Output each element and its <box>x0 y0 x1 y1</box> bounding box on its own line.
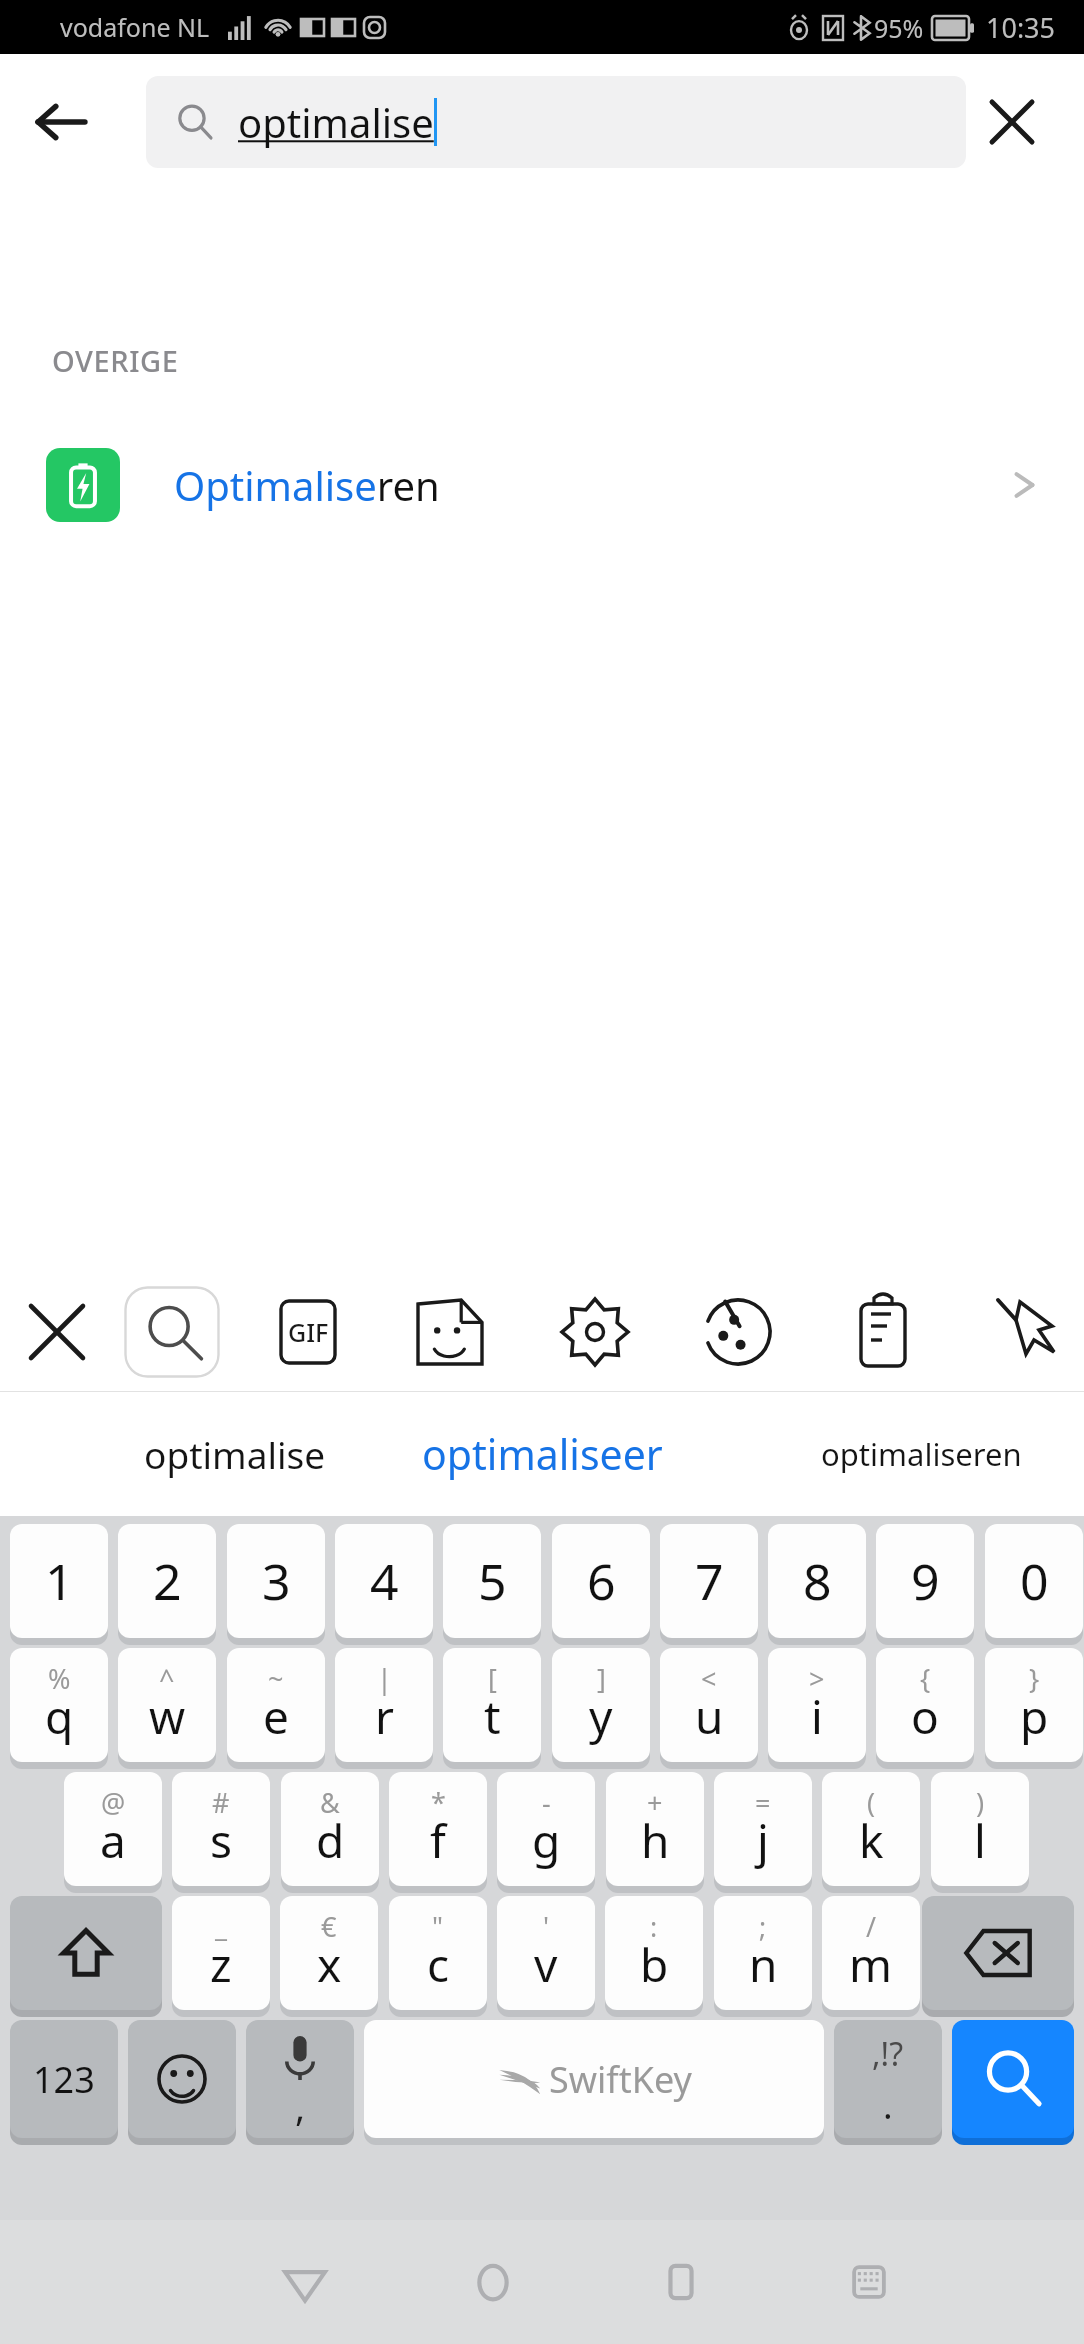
button[interactable]: ] <box>552 1648 650 1762</box>
button[interactable]: [ <box>443 1648 541 1762</box>
button[interactable]: 8 <box>768 1524 866 1638</box>
staticText: u <box>695 1685 724 1748</box>
button[interactable]: ) <box>931 1772 1029 1886</box>
button[interactable]: Punctuation <box>834 2020 942 2138</box>
staticText: " <box>432 1908 444 1945</box>
button[interactable]: { <box>876 1648 974 1762</box>
staticText: ,!? <box>872 2032 904 2076</box>
button[interactable]: } <box>985 1648 1083 1762</box>
button[interactable]: % <box>10 1648 108 1762</box>
staticText: o <box>911 1685 939 1748</box>
staticText: . <box>883 2081 893 2130</box>
staticText: 8 <box>803 1547 832 1615</box>
button[interactable]: 123 <box>10 2020 118 2138</box>
button[interactable]: # <box>172 1772 270 1886</box>
button[interactable]: 0 <box>985 1524 1083 1638</box>
button[interactable]: ( <box>822 1772 920 1886</box>
button[interactable]: ' <box>497 1896 595 2010</box>
button[interactable]: optimaliseer <box>422 1426 663 1482</box>
button[interactable]: @ <box>64 1772 162 1886</box>
staticText: 6 <box>587 1547 616 1615</box>
button[interactable]: & <box>281 1772 379 1886</box>
button[interactable]: Emoji <box>128 2020 236 2138</box>
staticText: r <box>375 1685 394 1748</box>
staticText: 7 <box>695 1547 724 1615</box>
button[interactable]: * <box>389 1772 487 1886</box>
button[interactable]: Recents <box>626 2227 736 2337</box>
button[interactable]: _ <box>172 1896 270 2010</box>
button[interactable]: | <box>335 1648 433 1762</box>
button[interactable]: > <box>768 1648 866 1762</box>
staticText: ~ <box>268 1660 284 1697</box>
staticText: l <box>974 1809 986 1872</box>
staticText: a <box>100 1809 126 1872</box>
staticText: < <box>701 1660 717 1697</box>
staticText: 9 <box>911 1547 940 1615</box>
button[interactable]: / <box>822 1896 920 2010</box>
button[interactable]: Settings <box>547 1284 643 1380</box>
staticText: @ <box>101 1784 126 1821</box>
button[interactable]: Themes <box>690 1284 786 1380</box>
button[interactable]: optimalise <box>144 1429 326 1479</box>
button[interactable]: Back <box>20 81 102 163</box>
button[interactable]: < <box>660 1648 758 1762</box>
button[interactable]: = <box>714 1772 812 1886</box>
button[interactable]: Search <box>952 2020 1074 2138</box>
staticText: ) <box>976 1784 985 1821</box>
button[interactable]: Search <box>124 1286 220 1378</box>
button[interactable]: optimaliseren <box>821 1433 1022 1475</box>
button[interactable]: 7 <box>660 1524 758 1638</box>
button[interactable]: Stickers <box>402 1284 498 1380</box>
button[interactable]: 3 <box>227 1524 325 1638</box>
button[interactable]: Optimaliseren <box>0 430 1084 540</box>
staticText: € <box>321 1908 337 1945</box>
button[interactable]: Voice input <box>246 2020 354 2138</box>
staticText: k <box>859 1809 884 1872</box>
button[interactable]: GIF <box>264 1297 352 1367</box>
button[interactable]: Close toolbar <box>9 1284 105 1380</box>
staticText: e <box>263 1685 289 1748</box>
staticText: 2 <box>153 1547 182 1615</box>
staticText: h <box>641 1809 670 1872</box>
button[interactable]: Pin toolbar <box>980 1284 1076 1380</box>
staticText: optimaliseren <box>821 1433 1022 1475</box>
button[interactable]: - <box>497 1772 595 1886</box>
button[interactable]: Clipboard <box>835 1284 931 1380</box>
staticText: p <box>1020 1685 1049 1748</box>
button[interactable]: Backspace <box>922 1896 1074 2010</box>
button[interactable]: Space <box>364 2020 824 2138</box>
staticText: SwiftKey <box>549 2055 692 2104</box>
button[interactable]: 2 <box>118 1524 216 1638</box>
button[interactable]: Shift <box>10 1896 162 2010</box>
staticText: - <box>542 1784 551 1821</box>
staticText: t <box>484 1685 501 1748</box>
button[interactable]: Back <box>250 2227 360 2337</box>
button[interactable]: 6 <box>552 1524 650 1638</box>
button[interactable]: 4 <box>335 1524 433 1638</box>
button[interactable]: optimalise <box>146 76 966 168</box>
button[interactable]: 1 <box>10 1524 108 1638</box>
staticText: 4 <box>370 1547 399 1615</box>
button[interactable]: ~ <box>227 1648 325 1762</box>
button[interactable]: " <box>389 1896 487 2010</box>
staticText: ( <box>867 1784 876 1821</box>
staticText: , <box>295 2080 306 2132</box>
staticText: Optimaliseren <box>174 458 440 512</box>
button[interactable]: Home <box>438 2227 548 2337</box>
staticText: } <box>1029 1660 1040 1697</box>
button[interactable]: Hide keyboard <box>814 2227 924 2337</box>
staticText: i <box>811 1685 823 1748</box>
button[interactable]: ; <box>714 1896 812 2010</box>
staticText: ] <box>597 1660 606 1697</box>
button[interactable]: 9 <box>876 1524 974 1638</box>
button[interactable]: + <box>606 1772 704 1886</box>
staticText: : <box>650 1908 658 1945</box>
staticText: * <box>431 1784 446 1821</box>
button[interactable]: 5 <box>443 1524 541 1638</box>
button[interactable]: : <box>605 1896 703 2010</box>
button[interactable]: ^ <box>118 1648 216 1762</box>
button[interactable]: € <box>280 1896 378 2010</box>
staticText: & <box>320 1784 340 1821</box>
staticText: f <box>430 1809 446 1872</box>
button[interactable]: Clear search <box>972 82 1052 162</box>
